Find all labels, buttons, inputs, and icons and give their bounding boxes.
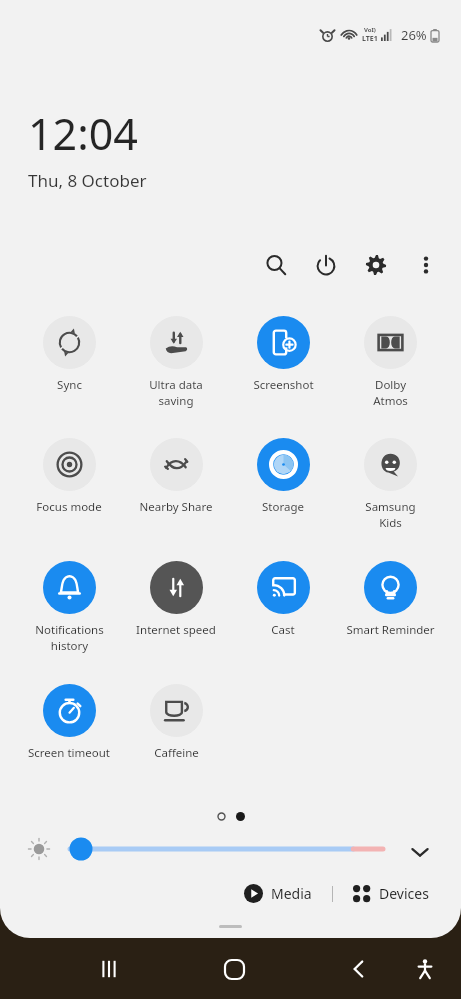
button[interactable]: Media — [238, 880, 318, 907]
button[interactable]: Internet speed — [122, 561, 230, 638]
button[interactable]: Sync — [15, 316, 123, 393]
staticText: Notifications history — [35, 622, 104, 653]
button[interactable]: Nearby Share — [122, 438, 230, 515]
button[interactable]: Expand brightness options — [404, 836, 436, 868]
staticText: Cast — [271, 622, 295, 638]
button[interactable]: Samsung Kids — [336, 438, 444, 530]
staticText: Sync — [57, 377, 82, 393]
button[interactable]: Settings — [359, 248, 393, 282]
button[interactable]: Caffeine — [122, 684, 230, 761]
button[interactable]: Dolby Atmos — [336, 316, 444, 408]
button[interactable]: More options — [409, 248, 443, 282]
staticText: Thu, 8 October — [28, 169, 147, 192]
staticText: Ultra data saving — [149, 377, 203, 408]
staticText: Storage — [262, 499, 304, 515]
button[interactable]: Recents — [85, 945, 133, 993]
staticText: Samsung Kids — [365, 499, 416, 530]
button[interactable]: Screen timeout — [15, 684, 123, 761]
button[interactable]: Notifications history — [15, 561, 123, 653]
staticText: Dolby Atmos — [373, 377, 408, 408]
button[interactable]: Screenshot — [229, 316, 337, 393]
staticText: Nearby Share — [139, 499, 213, 515]
button[interactable]: Devices — [347, 880, 435, 907]
button[interactable]: Home — [210, 945, 258, 993]
staticText: Smart Reminder — [346, 622, 435, 638]
button[interactable]: Brightness — [26, 836, 52, 862]
button[interactable]: Power off — [309, 248, 343, 282]
button[interactable]: Smart Reminder — [336, 561, 444, 638]
staticText: Internet speed — [136, 622, 216, 638]
staticText: VoI) — [364, 26, 376, 34]
staticText: Media — [271, 884, 312, 903]
staticText: Focus mode — [36, 499, 102, 515]
staticText: Devices — [379, 884, 429, 903]
staticText: LTE1 — [362, 34, 378, 44]
staticText: Caffeine — [154, 745, 199, 761]
button[interactable]: Storage — [229, 438, 337, 515]
button[interactable]: Focus mode — [15, 438, 123, 515]
button[interactable]: Back — [335, 945, 383, 993]
button[interactable]: Brightness slider — [60, 832, 395, 866]
staticText: 26% — [401, 26, 427, 44]
button[interactable]: Ultra data saving — [122, 316, 230, 408]
button[interactable]: Search — [259, 248, 293, 282]
staticText: Screen timeout — [28, 745, 110, 761]
button[interactable]: Accessibility — [401, 945, 449, 993]
staticText: 12:04 — [28, 104, 138, 163]
button[interactable]: Cast — [229, 561, 337, 638]
staticText: Screenshot — [253, 377, 314, 393]
